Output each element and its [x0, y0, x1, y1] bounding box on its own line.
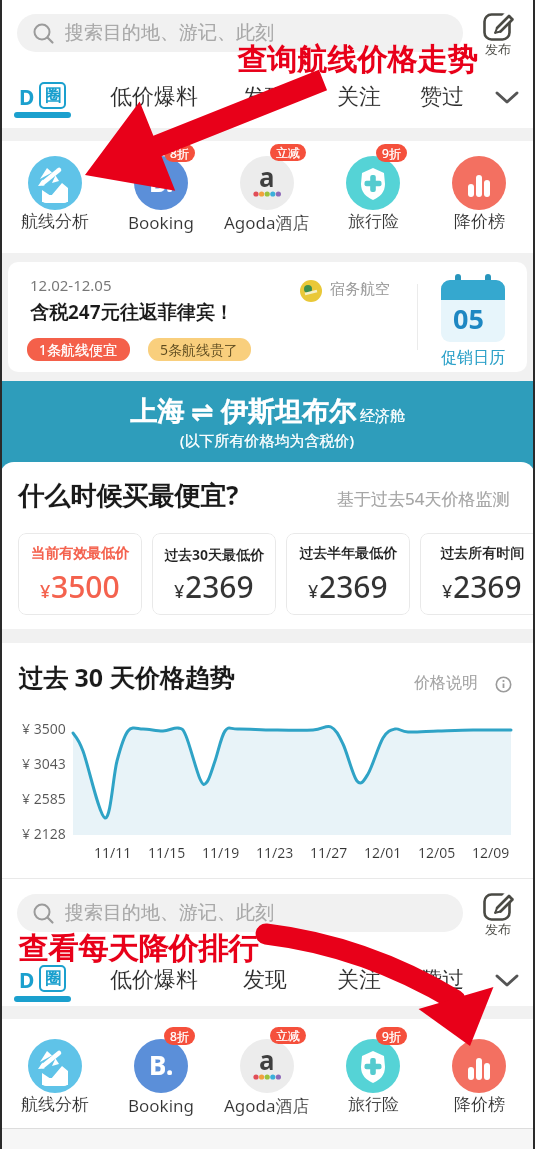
staticText: 2369: [453, 566, 522, 607]
button[interactable]: [5, 142, 105, 242]
staticText: 赞过: [420, 966, 464, 994]
staticText: 降价榜: [454, 1094, 505, 1115]
staticText: 12/09: [472, 843, 510, 862]
staticText: 经济舱: [356, 405, 405, 425]
button[interactable]: 过去半年最低价: [286, 533, 410, 615]
staticText: 航线分析: [21, 211, 89, 232]
staticText: Booking: [128, 1094, 195, 1117]
staticText: 关注: [337, 966, 381, 994]
staticText: 12/01: [364, 843, 402, 862]
staticText: 当前有效最低价: [31, 545, 129, 563]
button[interactable]: a: [217, 1025, 317, 1125]
staticText: 低价爆料: [110, 966, 198, 994]
button[interactable]: a: [217, 142, 317, 242]
button[interactable]: 关注: [337, 83, 381, 111]
button[interactable]: [429, 142, 529, 242]
staticText: 2369: [319, 566, 388, 607]
staticText: 航线分析: [21, 1094, 89, 1115]
button[interactable]: 发现: [243, 966, 287, 994]
button[interactable]: 9折: [323, 1025, 423, 1125]
button[interactable]: 赞过: [420, 966, 464, 994]
button[interactable]: 过去30天最低价: [152, 533, 276, 615]
staticText: 什么时候买最便宜?: [18, 477, 239, 513]
button[interactable]: 关注: [337, 966, 381, 994]
button[interactable]: 05: [437, 274, 509, 369]
staticText: 价格说明: [414, 673, 478, 693]
staticText: 查看每天降价排行: [18, 930, 258, 968]
staticText: 3500: [51, 566, 120, 607]
button[interactable]: 当前有效最低价: [18, 533, 142, 615]
staticText: ¥ 2585: [22, 789, 66, 808]
staticText: 2369: [185, 566, 254, 607]
staticText: ¥ 3500: [22, 719, 66, 738]
button[interactable]: [5, 1025, 105, 1125]
staticText: 过去 30 天价格趋势: [18, 660, 235, 694]
staticText: 过去半年最低价: [299, 545, 397, 563]
staticText: 8折: [170, 145, 189, 161]
staticText: 立减: [276, 1028, 300, 1043]
staticText: 过去所有时间: [440, 545, 524, 563]
staticText: 上海 ⇌ 伊斯坦布尔: [130, 392, 356, 429]
button[interactable]: D: [15, 962, 75, 998]
staticText: 发现: [243, 966, 287, 994]
staticText: 11/27: [310, 843, 348, 862]
staticText: D: [19, 83, 35, 112]
staticText: 宿务航空: [330, 280, 390, 299]
staticText: (以下所有价格均为含税价): [180, 430, 355, 450]
button[interactable]: 赞过: [420, 83, 464, 111]
staticText: 降价榜: [454, 211, 505, 232]
button[interactable]: 发现: [243, 83, 287, 111]
staticText: 基于过去54天价格监测: [337, 487, 510, 510]
staticText: 立减: [276, 145, 300, 160]
staticText: 促销日历: [441, 348, 505, 368]
button[interactable]: B.: [111, 1025, 211, 1125]
staticText: Agoda酒店: [224, 211, 310, 234]
button[interactable]: D: [15, 79, 75, 115]
staticText: ¥: [442, 579, 453, 604]
staticText: Agoda酒店: [224, 1094, 310, 1117]
staticText: 12/05: [418, 843, 456, 862]
staticText: a: [259, 159, 275, 194]
staticText: 关注: [337, 83, 381, 111]
button[interactable]: [429, 1025, 529, 1125]
staticText: 11/15: [148, 843, 186, 862]
button[interactable]: B.: [111, 142, 211, 242]
staticText: ¥ 3043: [22, 754, 66, 773]
button[interactable]: 搜索目的地、游记、此刻: [17, 894, 463, 932]
staticText: 旅行险: [348, 1094, 399, 1115]
staticText: 含税247元往返菲律宾！: [30, 299, 234, 325]
staticText: 12.02-12.05: [30, 275, 112, 295]
staticText: 过去30天最低价: [164, 545, 265, 564]
staticText: B.: [149, 164, 174, 199]
staticText: 9折: [382, 145, 401, 161]
staticText: 圈: [45, 86, 61, 106]
staticText: 圈: [45, 969, 61, 989]
staticText: a: [259, 1042, 275, 1077]
button[interactable]: 搜索目的地、游记、此刻: [17, 14, 463, 52]
staticText: 11/23: [256, 843, 294, 862]
staticText: 搜索目的地、游记、此刻: [65, 21, 274, 45]
staticText: ¥: [40, 579, 51, 604]
staticText: 旅行险: [348, 211, 399, 232]
staticText: D: [19, 966, 35, 995]
staticText: ¥: [308, 579, 319, 604]
staticText: 搜索目的地、游记、此刻: [65, 901, 274, 925]
staticText: 11/19: [202, 843, 240, 862]
staticText: ¥: [174, 579, 185, 604]
staticText: 查询航线价格走势: [237, 41, 477, 79]
button[interactable]: 发布: [481, 888, 517, 940]
button[interactable]: 发布: [481, 8, 517, 60]
staticText: B.: [149, 1047, 174, 1082]
button[interactable]: [494, 973, 520, 989]
staticText: 发布: [485, 921, 511, 937]
staticText: 8折: [170, 1028, 189, 1044]
staticText: Booking: [128, 211, 195, 234]
staticText: 05: [453, 300, 484, 337]
staticText: 赞过: [420, 83, 464, 111]
button[interactable]: 9折: [323, 142, 423, 242]
button[interactable]: 过去所有时间: [420, 533, 535, 615]
staticText: 5条航线贵了: [160, 340, 239, 359]
staticText: 11/11: [94, 843, 132, 862]
button[interactable]: 12.02-12.05: [8, 262, 527, 372]
button[interactable]: [494, 90, 520, 106]
